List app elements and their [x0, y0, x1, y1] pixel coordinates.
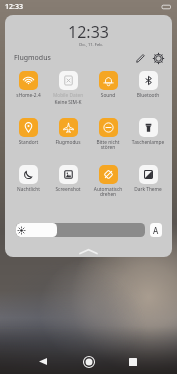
button[interactable]: Home: [78, 353, 100, 370]
button[interactable]: Screenshot: [48, 165, 88, 211]
button[interactable]: Automatisch drehen: [88, 165, 128, 211]
button[interactable]: Taschenlampe: [128, 118, 168, 165]
button[interactable]: Brightness: [16, 223, 145, 237]
button[interactable]: Settings: [152, 52, 164, 64]
staticText: Screenshot: [49, 186, 87, 193]
button[interactable]: Dark Theme: [128, 165, 168, 211]
staticText: Dark Theme: [129, 186, 167, 193]
staticText: Flugmodus: [14, 53, 51, 63]
button[interactable]: A: [150, 223, 162, 237]
staticText: Mobile Daten: [49, 92, 87, 99]
staticText: Bluetooth: [129, 92, 167, 99]
staticText: A: [153, 225, 159, 236]
button[interactable]: Bluetooth: [128, 71, 168, 118]
staticText: 12:33: [5, 2, 23, 12]
button[interactable]: sHome-2.4: [9, 71, 48, 118]
staticText: Nachtlicht: [10, 186, 47, 193]
staticText: Taschenlampe: [129, 139, 167, 146]
button[interactable]: Recents: [122, 353, 144, 370]
button[interactable]: Sound: [88, 71, 128, 118]
staticText: Bitte nicht stören: [89, 139, 127, 151]
staticText: Flugmodus: [49, 139, 87, 146]
button[interactable]: Back: [32, 353, 54, 370]
staticText: 12:33: [68, 21, 109, 43]
staticText: Keine SIM-K: [48, 99, 88, 106]
button[interactable]: Flugmodus: [48, 118, 88, 165]
button[interactable]: Mobile Daten: [48, 71, 88, 118]
staticText: Sound: [89, 92, 127, 99]
staticText: Do., 11. Feb.: [79, 42, 103, 48]
staticText: sHome-2.4: [10, 92, 47, 99]
staticText: Standort: [10, 139, 47, 146]
button[interactable]: Standort: [9, 118, 48, 165]
staticText: Automatisch drehen: [89, 186, 127, 198]
button[interactable]: Edit: [134, 52, 146, 64]
button[interactable]: Bitte nicht stören: [88, 118, 128, 165]
button[interactable]: Nachtlicht: [9, 165, 48, 211]
